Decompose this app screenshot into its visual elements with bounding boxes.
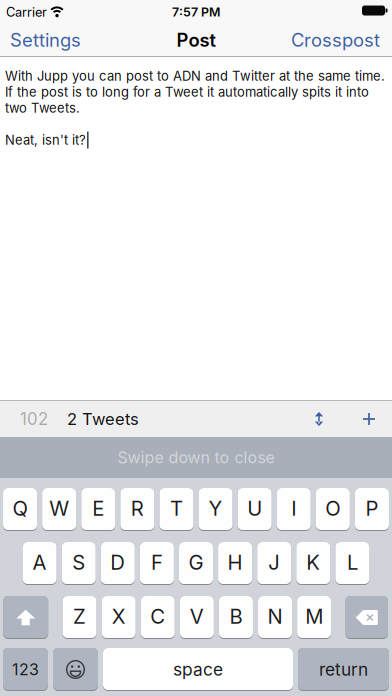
button[interactable]: A bbox=[23, 542, 57, 585]
staticText: N bbox=[268, 604, 283, 629]
button[interactable]: return bbox=[298, 648, 389, 691]
button[interactable]: U bbox=[238, 488, 272, 531]
button[interactable]: M bbox=[297, 596, 331, 639]
staticText: L bbox=[347, 550, 358, 575]
staticText: Z bbox=[73, 604, 86, 629]
staticText: Neat, isn't it? bbox=[5, 132, 86, 148]
staticText: G bbox=[188, 550, 203, 575]
button[interactable]: E bbox=[81, 488, 115, 531]
staticText: E bbox=[92, 496, 104, 521]
button[interactable]: S bbox=[62, 542, 96, 585]
staticText: W bbox=[49, 496, 69, 521]
staticText: With Jupp you can post to ADN and Twitte… bbox=[5, 68, 385, 84]
button[interactable]: G bbox=[179, 542, 213, 585]
staticText: O bbox=[325, 496, 340, 521]
staticText: Crosspost bbox=[291, 29, 380, 51]
staticText: C bbox=[150, 604, 165, 629]
button[interactable]: L bbox=[335, 542, 369, 585]
staticText: 7:57 PM bbox=[172, 4, 220, 19]
staticText: U bbox=[247, 496, 262, 521]
staticText: space bbox=[173, 659, 223, 680]
button[interactable]: C bbox=[141, 596, 175, 639]
button[interactable]: W bbox=[42, 488, 76, 531]
staticText: X bbox=[112, 604, 126, 629]
staticText: R bbox=[131, 496, 144, 521]
staticText: K bbox=[306, 550, 320, 575]
button[interactable]: K bbox=[296, 542, 330, 585]
staticText: 123 bbox=[12, 660, 39, 679]
staticText: T bbox=[170, 496, 183, 521]
staticText: M bbox=[305, 604, 323, 629]
staticText: Carrier bbox=[6, 4, 47, 20]
staticText: V bbox=[190, 604, 204, 629]
staticText: Settings bbox=[10, 29, 81, 51]
staticText: D bbox=[110, 550, 125, 575]
button[interactable]: F bbox=[140, 542, 174, 585]
button[interactable]: Delete bbox=[345, 596, 388, 639]
staticText: return bbox=[319, 659, 368, 680]
staticText: two Tweets. bbox=[5, 100, 80, 116]
staticText: B bbox=[229, 604, 242, 629]
button[interactable]: Q bbox=[3, 488, 37, 531]
staticText: F bbox=[151, 550, 163, 575]
button[interactable]: Shift bbox=[3, 596, 48, 639]
button[interactable]: Settings bbox=[10, 29, 81, 51]
button[interactable]: T bbox=[159, 488, 193, 531]
staticText: S bbox=[72, 550, 85, 575]
button[interactable]: J bbox=[257, 542, 291, 585]
staticText: J bbox=[268, 550, 280, 575]
button[interactable]: N bbox=[258, 596, 292, 639]
button[interactable]: P bbox=[355, 488, 389, 531]
staticText: A bbox=[33, 550, 47, 575]
button[interactable]: Emoji bbox=[53, 648, 98, 691]
button[interactable]: space bbox=[103, 648, 293, 691]
button[interactable]: Z bbox=[62, 596, 96, 639]
staticText: I bbox=[291, 496, 296, 521]
button[interactable]: Y bbox=[199, 488, 233, 531]
button[interactable]: O bbox=[316, 488, 350, 531]
button[interactable]: Adjust split bbox=[304, 401, 334, 437]
button[interactable]: D bbox=[101, 542, 135, 585]
button[interactable]: H bbox=[218, 542, 252, 585]
button[interactable]: Add bbox=[352, 401, 386, 437]
button[interactable]: R bbox=[120, 488, 154, 531]
staticText: Q bbox=[13, 496, 28, 521]
staticText: Post bbox=[176, 29, 215, 51]
staticText: H bbox=[228, 550, 243, 575]
staticText: P bbox=[365, 496, 378, 521]
button[interactable]: Crosspost bbox=[291, 29, 380, 51]
button[interactable]: Numbers bbox=[3, 648, 48, 691]
button[interactable]: B bbox=[219, 596, 253, 639]
staticText: 2 Tweets bbox=[67, 409, 139, 429]
button[interactable]: I bbox=[277, 488, 311, 531]
staticText: Swipe down to close bbox=[117, 448, 274, 467]
button[interactable]: V bbox=[180, 596, 214, 639]
staticText: 102 bbox=[20, 409, 48, 429]
button[interactable]: X bbox=[102, 596, 136, 639]
staticText: Y bbox=[209, 496, 223, 521]
staticText: If the post is to long for a Tweet it au… bbox=[5, 84, 369, 100]
button[interactable]: Swipe down to close bbox=[0, 437, 392, 478]
